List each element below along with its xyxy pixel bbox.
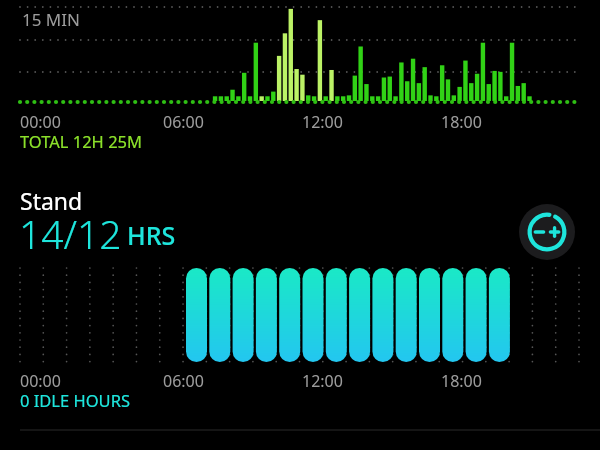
staticText: 00:00 [20, 370, 61, 392]
staticText: 15 MIN [22, 8, 80, 31]
staticText: 06:00 [163, 111, 204, 133]
staticText: 12:00 [302, 370, 343, 392]
staticText: HRS [127, 218, 176, 252]
staticText: 06:00 [163, 370, 204, 392]
staticText: 0 IDLE HOURS [20, 389, 130, 411]
staticText: Stand [20, 185, 83, 216]
staticText: TOTAL 12H 25M [20, 130, 142, 152]
button[interactable]: Change Stand goal [519, 204, 575, 260]
staticText: 14/12 [19, 207, 122, 260]
staticText: 12:00 [302, 111, 343, 133]
staticText: 18:00 [441, 111, 482, 133]
staticText: 18:00 [441, 370, 482, 392]
staticText: 00:00 [20, 111, 61, 133]
